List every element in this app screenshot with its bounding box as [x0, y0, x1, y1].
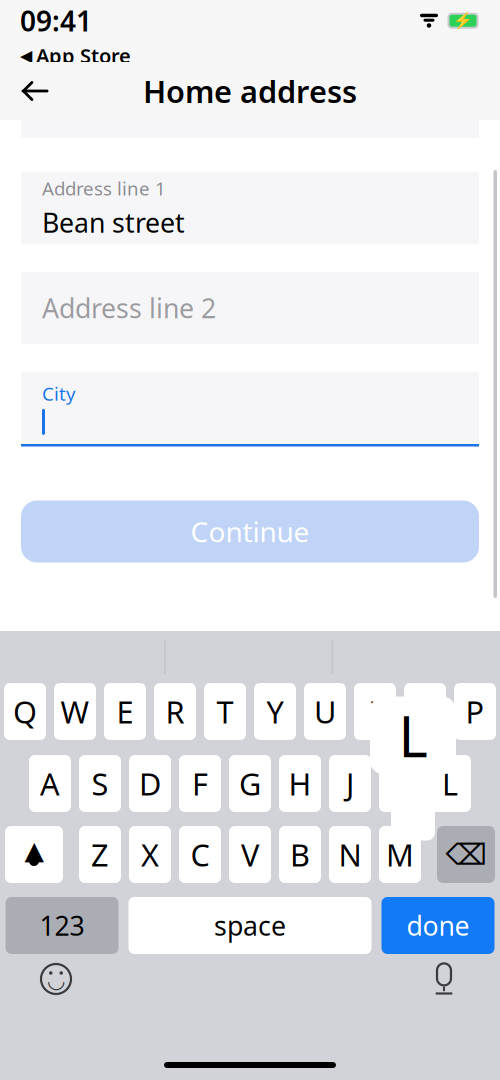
- staticText: E: [116, 691, 133, 732]
- staticText: R: [165, 691, 184, 732]
- staticText: U: [314, 691, 336, 732]
- staticText: Home address: [143, 71, 357, 111]
- staticText: Bean street: [42, 205, 185, 240]
- button[interactable]: O: [404, 683, 446, 740]
- button[interactable]: Emoji: [28, 956, 84, 1002]
- button[interactable]: space: [128, 897, 371, 954]
- staticText: ⚡: [453, 12, 473, 30]
- button[interactable]: S: [79, 755, 121, 812]
- button[interactable]: B: [279, 826, 321, 883]
- button[interactable]: Delete: [437, 826, 495, 883]
- staticText: F: [192, 763, 208, 804]
- button[interactable]: A: [29, 755, 71, 812]
- staticText: City: [42, 381, 76, 406]
- button[interactable]: P: [454, 683, 496, 740]
- staticText: V: [241, 834, 259, 875]
- button[interactable]: I: [354, 683, 396, 740]
- staticText: 09:41: [20, 2, 92, 39]
- staticText: L: [398, 698, 427, 773]
- button[interactable]: W: [54, 683, 96, 740]
- button[interactable]: J: [329, 755, 371, 812]
- staticText: 123: [39, 908, 84, 943]
- staticText: P: [465, 691, 484, 732]
- staticText: A: [40, 763, 60, 804]
- staticText: App Store: [36, 42, 131, 69]
- button[interactable]: Dictate: [416, 956, 472, 1002]
- button[interactable]: K: [379, 755, 421, 812]
- staticText: D: [139, 763, 161, 804]
- button[interactable]: G: [229, 755, 271, 812]
- button[interactable]: City: [21, 372, 479, 446]
- staticText: J: [346, 763, 354, 804]
- button[interactable]: C: [179, 826, 221, 883]
- staticText: I: [370, 691, 380, 732]
- button[interactable]: X: [129, 826, 171, 883]
- staticText: space: [214, 908, 286, 943]
- button[interactable]: Q: [4, 683, 46, 740]
- staticText: Q: [13, 691, 37, 732]
- button[interactable]: Continue: [21, 500, 479, 562]
- button[interactable]: F: [179, 755, 221, 812]
- button[interactable]: U: [304, 683, 346, 740]
- staticText: ◡: [48, 968, 64, 992]
- button[interactable]: D: [129, 755, 171, 812]
- button[interactable]: Back: [8, 67, 62, 115]
- staticText: N: [338, 834, 361, 875]
- button[interactable]: L: [429, 755, 471, 812]
- staticText: done: [406, 908, 469, 943]
- button[interactable]: Y: [254, 683, 296, 740]
- button[interactable]: Address line 2: [21, 272, 479, 344]
- button[interactable]: N: [329, 826, 371, 883]
- staticText: Address line 2: [42, 290, 216, 326]
- button[interactable]: Address line 1: [21, 172, 479, 244]
- button[interactable]: V: [229, 826, 271, 883]
- button[interactable]: Z: [79, 826, 121, 883]
- staticText: L: [442, 763, 458, 804]
- button[interactable]: M: [379, 826, 421, 883]
- button[interactable]: Shift: [5, 826, 63, 883]
- staticText: W: [60, 691, 89, 732]
- button[interactable]: H: [279, 755, 321, 812]
- staticText: H: [288, 763, 311, 804]
- button[interactable]: R: [154, 683, 196, 740]
- staticText: ▲: [24, 836, 43, 865]
- staticText: ⌫: [445, 838, 486, 871]
- staticText: Address line 1: [42, 176, 166, 201]
- button[interactable]: 123: [5, 897, 118, 954]
- staticText: ◀: [20, 46, 32, 65]
- staticText: X: [141, 834, 159, 875]
- staticText: Z: [91, 834, 109, 875]
- staticText: G: [239, 763, 261, 804]
- staticText: T: [216, 691, 233, 732]
- staticText: S: [91, 763, 108, 804]
- staticText: Y: [266, 691, 283, 732]
- staticText: C: [190, 834, 209, 875]
- button[interactable]: E: [104, 683, 146, 740]
- staticText: Continue: [190, 513, 309, 550]
- staticText: B: [290, 834, 310, 875]
- button[interactable]: done: [381, 897, 494, 954]
- staticText: M: [386, 834, 414, 875]
- button[interactable]: T: [204, 683, 246, 740]
